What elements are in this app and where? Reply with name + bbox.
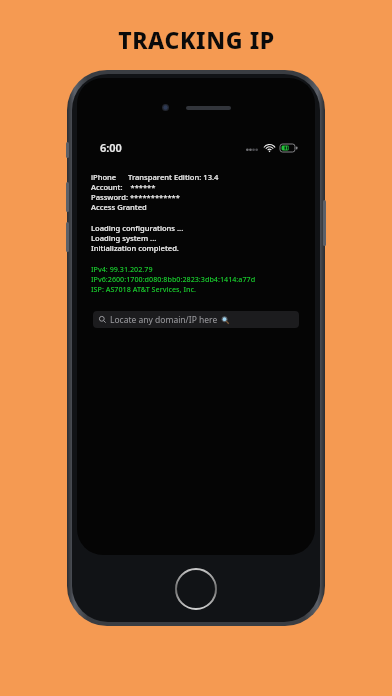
staticText: IPv4: 99.31.202.79 — [91, 264, 153, 274]
staticText: IPv6:2600:1700:d080:8bb0:2823:3db4:1414:… — [91, 274, 256, 284]
staticText: iPhone Transparent Edition: 13.4 — [91, 172, 219, 182]
button[interactable]: Home — [174, 567, 218, 611]
staticText: Locate any domain/IP here — [110, 314, 218, 326]
staticText: Password: ************ — [91, 192, 180, 202]
staticText: ISP: AS7018 AT&T Services, Inc. — [91, 284, 196, 294]
staticText: TRACKING IP — [118, 24, 275, 55]
staticText: Account: ****** — [91, 182, 156, 192]
staticText: Loading system ... — [91, 233, 157, 243]
staticText: Access Granted — [91, 202, 147, 212]
staticText: 6:00 — [100, 140, 122, 155]
button[interactable]: Locate any domain/IP here — [93, 311, 299, 328]
staticText: Initialization completed. — [91, 243, 179, 253]
staticText: Loading configurations ... — [91, 223, 184, 233]
